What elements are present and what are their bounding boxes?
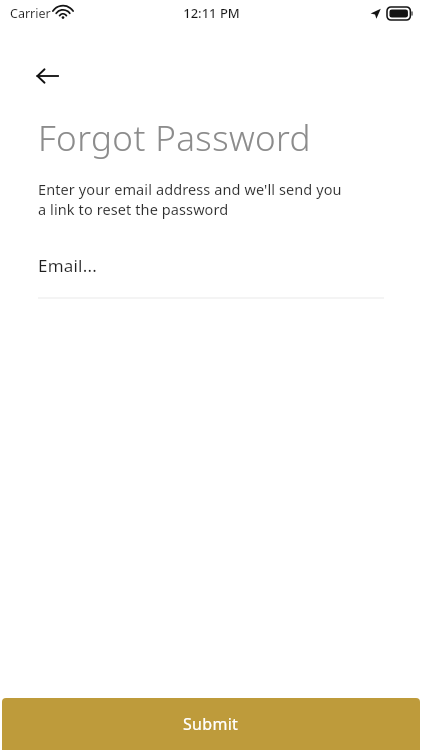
staticText: Submit — [183, 713, 239, 735]
staticText: 12:11 PM — [183, 4, 240, 22]
staticText: Enter your email address and we'll send … — [38, 179, 342, 220]
staticText: Carrier — [10, 5, 51, 22]
staticText: Forgot Password — [38, 114, 311, 162]
button[interactable]: Email... — [0, 254, 422, 299]
button[interactable]: Back — [29, 58, 65, 94]
staticText: Email... — [38, 254, 97, 277]
button[interactable]: Submit — [2, 698, 420, 750]
